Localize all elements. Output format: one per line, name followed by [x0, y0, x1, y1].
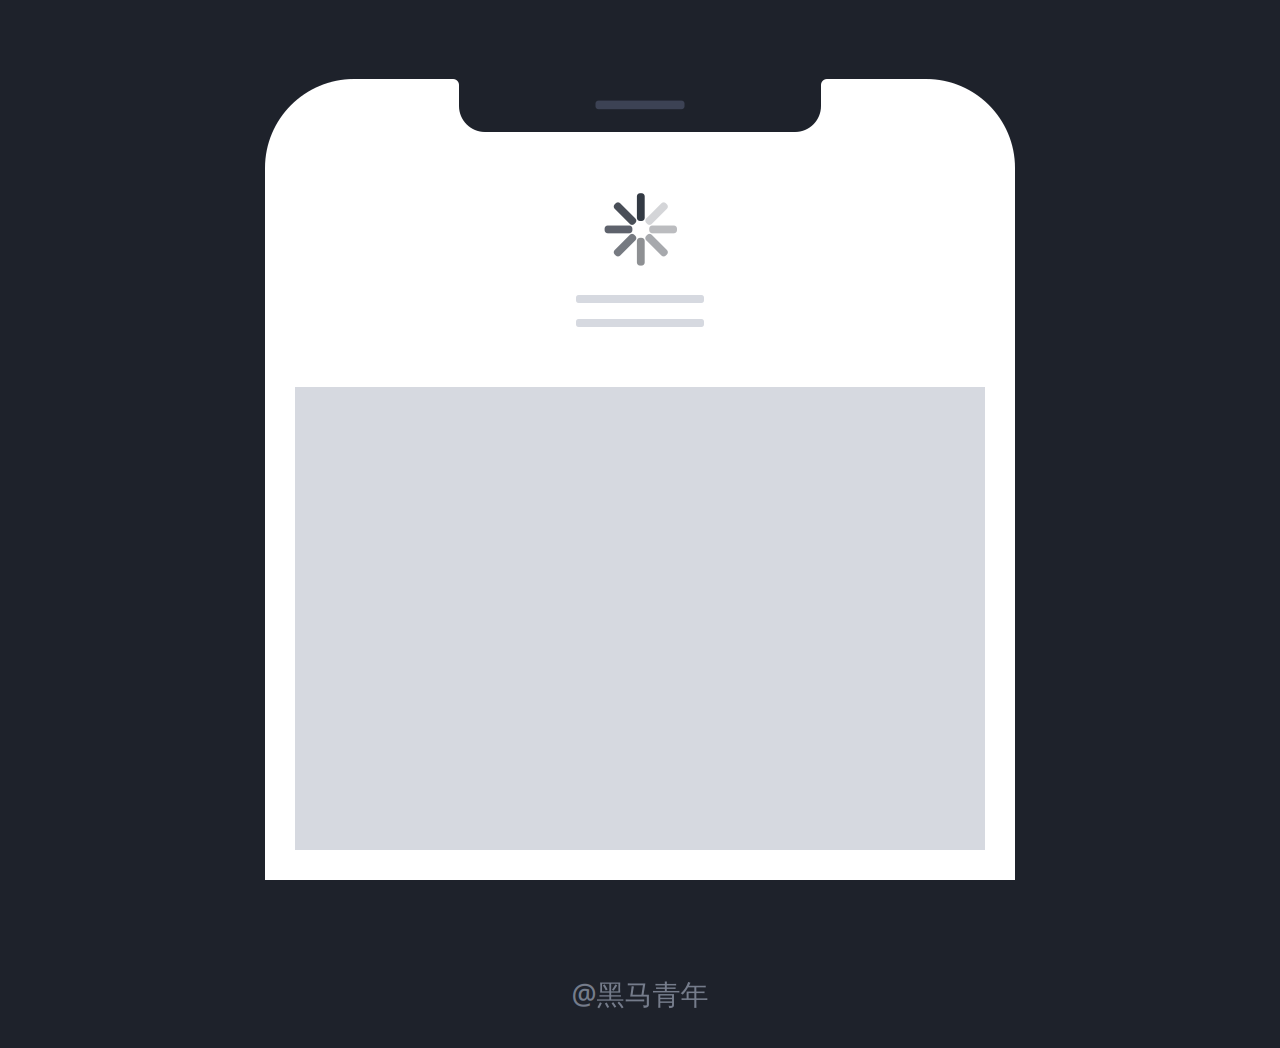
staticText: @黑马青年 [571, 975, 708, 1013]
